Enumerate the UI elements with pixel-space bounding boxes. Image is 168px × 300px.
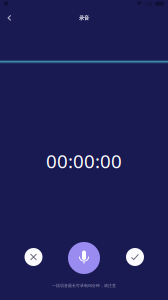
- button[interactable]: Cancel recording: [20, 244, 46, 270]
- staticText: 00:00:00: [46, 149, 122, 173]
- staticText: 一段语音最长可录制60分钟，请注意: [52, 283, 116, 288]
- staticText: 录音: [79, 15, 89, 21]
- button[interactable]: Back: [0, 8, 20, 28]
- button[interactable]: Start recording: [66, 240, 102, 276]
- button[interactable]: Finish recording: [122, 244, 148, 270]
